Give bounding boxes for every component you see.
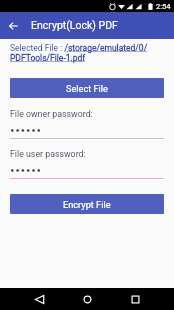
button[interactable]: Back: [15, 288, 63, 310]
button[interactable]: Select File: [10, 78, 164, 98]
staticText: Selected File : /storage/emulated/0/PDFT…: [10, 43, 164, 63]
staticText: File owner password:: [10, 109, 93, 119]
staticText: 2:54: [156, 2, 171, 11]
button[interactable]: Recent apps: [111, 288, 159, 310]
staticText: File user password:: [10, 149, 86, 159]
staticText: Encrypt(Lock) PDF: [31, 19, 118, 31]
button[interactable]: Back: [0, 12, 27, 39]
button[interactable]: Encrypt File: [10, 194, 164, 214]
button[interactable]: Home: [63, 288, 111, 310]
staticText: Select File: [66, 83, 108, 94]
staticText: Encrypt File: [63, 199, 111, 210]
